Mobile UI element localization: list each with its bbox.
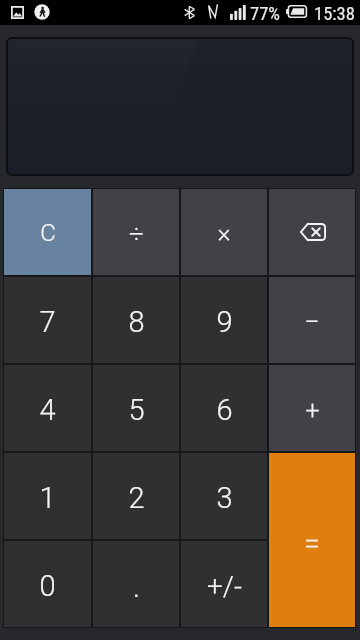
button[interactable]: = bbox=[269, 453, 355, 627]
staticText: +/- bbox=[207, 570, 242, 603]
button[interactable]: − bbox=[269, 277, 355, 363]
staticText: 9 bbox=[216, 305, 233, 339]
button[interactable]: 0 bbox=[4, 541, 91, 627]
staticText: − bbox=[304, 306, 320, 338]
button[interactable]: C bbox=[4, 189, 91, 275]
button[interactable]: 9 bbox=[181, 277, 267, 363]
staticText: 0 bbox=[39, 569, 56, 603]
staticText: . bbox=[133, 570, 140, 604]
staticText: + bbox=[305, 396, 320, 425]
staticText: = bbox=[304, 527, 320, 560]
button[interactable]: . bbox=[93, 541, 179, 627]
button[interactable]: 7 bbox=[4, 277, 91, 363]
staticText: 5 bbox=[128, 393, 145, 427]
button[interactable]: 5 bbox=[93, 365, 179, 451]
staticText: 77% bbox=[250, 3, 280, 25]
staticText: 8 bbox=[128, 305, 145, 339]
button[interactable]: 1 bbox=[4, 453, 91, 539]
staticText: 1 bbox=[39, 481, 56, 515]
staticText: × bbox=[217, 219, 231, 248]
staticText: 2 bbox=[128, 481, 145, 515]
staticText: 3 bbox=[216, 481, 233, 515]
staticText: 4 bbox=[39, 393, 56, 427]
button[interactable]: + bbox=[269, 365, 355, 451]
button[interactable]: 6 bbox=[181, 365, 267, 451]
staticText: 7 bbox=[39, 305, 56, 339]
button[interactable]: 2 bbox=[93, 453, 179, 539]
button[interactable]: 8 bbox=[93, 277, 179, 363]
staticText: 15:38 bbox=[314, 3, 355, 25]
button[interactable]: Backspace bbox=[269, 189, 355, 275]
button[interactable]: +/- bbox=[181, 541, 267, 627]
staticText: C bbox=[40, 219, 56, 247]
button[interactable]: × bbox=[181, 189, 267, 275]
staticText: 6 bbox=[216, 393, 233, 427]
button[interactable]: 4 bbox=[4, 365, 91, 451]
staticText: ÷ bbox=[129, 219, 144, 249]
button[interactable]: ÷ bbox=[93, 189, 179, 275]
button[interactable]: 3 bbox=[181, 453, 267, 539]
